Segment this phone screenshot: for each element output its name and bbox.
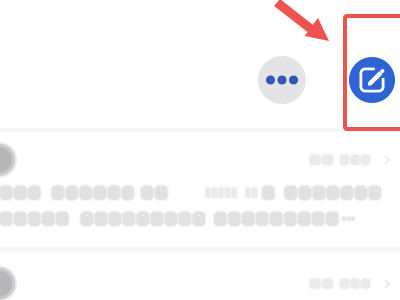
button[interactable]: Compose <box>349 57 395 103</box>
button[interactable] <box>0 253 400 300</box>
button[interactable] <box>0 132 400 247</box>
button[interactable]: More <box>258 56 306 104</box>
